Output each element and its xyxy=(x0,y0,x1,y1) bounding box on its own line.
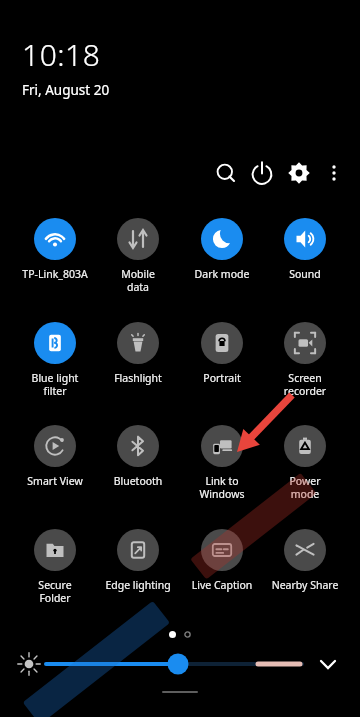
button[interactable]: Expand quick settings xyxy=(310,646,346,682)
button[interactable]: Live Caption xyxy=(181,529,263,592)
staticText: Sound xyxy=(264,267,346,281)
staticText: Nearby Share xyxy=(264,578,346,592)
button[interactable]: Search xyxy=(208,155,244,191)
staticText: Portrait xyxy=(181,371,263,385)
staticText: Secure Folder xyxy=(14,578,96,605)
button[interactable]: Brightness xyxy=(0,646,360,682)
staticText: Bluetooth xyxy=(97,474,179,488)
button[interactable]: Portrait xyxy=(181,322,263,385)
button[interactable]: TP-Link_803A xyxy=(14,218,96,281)
button[interactable]: Power mode xyxy=(264,425,346,501)
button[interactable]: Bluetooth xyxy=(97,425,179,488)
button[interactable]: Dark mode xyxy=(181,218,263,281)
staticText: Live Caption xyxy=(181,578,263,592)
button[interactable]: More options xyxy=(316,155,352,191)
button[interactable]: Flashlight xyxy=(97,322,179,385)
button[interactable]: Nearby Share xyxy=(264,529,346,592)
button[interactable]: Link to Windows xyxy=(181,425,263,501)
button[interactable]: Edge lighting xyxy=(97,529,179,592)
button[interactable]: Settings xyxy=(281,155,317,191)
staticText: Blue light filter xyxy=(14,371,96,398)
button[interactable]: Power xyxy=(244,155,280,191)
staticText: 10:18 xyxy=(22,34,101,75)
button[interactable]: Smart View xyxy=(14,425,96,488)
button[interactable]: Screen recorder xyxy=(264,322,346,398)
button[interactable]: Mobile data xyxy=(97,218,179,294)
button[interactable]: Blue light filter xyxy=(14,322,96,398)
staticText: Dark mode xyxy=(181,267,263,281)
staticText: Smart View xyxy=(14,474,96,488)
staticText: Power mode xyxy=(264,474,346,501)
staticText: TP-Link_803A xyxy=(14,267,96,281)
staticText: Fri, August 20 xyxy=(22,81,110,99)
staticText: Edge lighting xyxy=(97,578,179,592)
staticText: Flashlight xyxy=(97,371,179,385)
button[interactable]: Sound xyxy=(264,218,346,281)
staticText: Mobile data xyxy=(97,267,179,294)
staticText: Link to Windows xyxy=(181,474,263,501)
button[interactable]: Secure Folder xyxy=(14,529,96,605)
staticText: Screen recorder xyxy=(264,371,346,398)
